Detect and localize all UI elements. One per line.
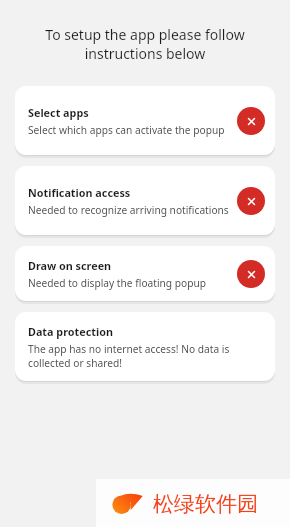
button[interactable]: Select apps: [15, 86, 275, 155]
button[interactable]: Permission not granted: [237, 260, 265, 288]
staticText: Select which apps can activate the popup: [28, 123, 225, 137]
staticText: Needed to display the floating popup: [28, 276, 207, 290]
button[interactable]: Permission not granted: [237, 187, 265, 215]
staticText: 松绿软件园: [153, 491, 258, 517]
staticText: To setup the app please follow instructi…: [15, 25, 275, 63]
staticText: Data protection: [28, 324, 113, 339]
staticText: The app has no internet access! No data …: [28, 342, 265, 370]
staticText: Select apps: [28, 105, 89, 120]
staticText: Needed to recognize arriving notificatio…: [28, 203, 229, 217]
staticText: Draw on screen: [28, 258, 112, 273]
button[interactable]: Permission not granted: [237, 107, 265, 135]
button[interactable]: Draw on screen: [15, 246, 275, 301]
button[interactable]: Data protection: [15, 312, 275, 381]
staticText: Notification access: [28, 185, 131, 200]
button[interactable]: Notification access: [15, 166, 275, 235]
